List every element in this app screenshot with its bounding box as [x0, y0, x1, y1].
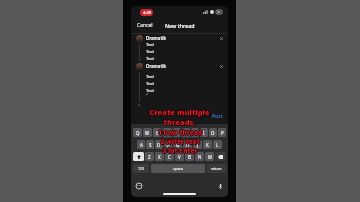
button[interactable]: Emoji [136, 183, 142, 189]
staticText: W [145, 130, 150, 136]
button[interactable]: Y [182, 128, 190, 137]
button[interactable]: Dictate [217, 183, 223, 189]
staticText: threads. [163, 118, 196, 128]
staticText: 3 hit enter [162, 146, 198, 155]
staticText: P [221, 130, 224, 136]
staticText: 3 hit enter [162, 147, 198, 156]
staticText: K [206, 142, 209, 148]
button[interactable]: Remove thread [219, 36, 224, 41]
staticText: Dramatik [146, 35, 166, 41]
button[interactable]: D [155, 140, 163, 149]
staticText: E [156, 130, 159, 136]
button[interactable]: R [163, 128, 172, 137]
button[interactable]: S [146, 140, 154, 149]
staticText: N [198, 154, 202, 160]
staticText: return [211, 166, 222, 171]
button[interactable]: H [183, 140, 192, 149]
staticText: 3 hit enter [161, 146, 197, 155]
button[interactable]: Remove thread [219, 64, 224, 69]
staticText: Text [146, 74, 155, 80]
button[interactable]: I [200, 128, 208, 137]
button[interactable]: return [207, 164, 226, 173]
staticText: 3 hit enter [163, 146, 199, 155]
staticText: J [197, 142, 199, 148]
button[interactable]: Q [133, 128, 142, 137]
button[interactable]: Cancel [136, 21, 154, 30]
button[interactable]: Backspace [215, 152, 226, 161]
staticText: threads. [164, 117, 197, 127]
staticText: Text [146, 88, 155, 94]
staticText: Z [148, 154, 151, 160]
staticText: L [216, 142, 219, 148]
staticText: Create multiple [149, 106, 210, 116]
button[interactable]: Post [211, 112, 224, 121]
button[interactable]: K [203, 140, 212, 149]
staticText: F [167, 142, 170, 148]
staticText: Cancel [137, 22, 153, 29]
staticText: Create multiple [149, 107, 210, 117]
staticText: C [168, 154, 171, 160]
staticText: 2 write text [161, 137, 201, 146]
button[interactable]: O [209, 128, 217, 137]
button[interactable]: A [137, 140, 145, 149]
staticText: 3 hit enter [162, 145, 198, 154]
button[interactable]: T [173, 128, 181, 137]
staticText: H [186, 142, 190, 148]
button[interactable]: space [151, 164, 205, 173]
button[interactable]: X [155, 152, 164, 161]
staticText: T [176, 130, 179, 136]
staticText: space [173, 166, 184, 171]
button[interactable]: N [195, 152, 204, 161]
button[interactable]: Shift [133, 152, 144, 161]
button[interactable]: W [143, 128, 152, 137]
staticText: Post [212, 113, 223, 120]
staticText: 2 write text [159, 137, 199, 146]
staticText: Create multiple [149, 108, 210, 118]
button[interactable]: M [205, 152, 214, 161]
staticText: 1 new thread [158, 127, 202, 136]
button[interactable]: F [164, 140, 172, 149]
staticText: Q [136, 130, 140, 136]
staticText: threads. [162, 117, 195, 127]
staticText: B [188, 154, 191, 160]
staticText: Create multiple [148, 107, 209, 117]
staticText: 4:29 [143, 10, 151, 15]
button[interactable]: Z [145, 152, 154, 161]
staticText: O [211, 130, 215, 136]
button[interactable]: U [191, 128, 199, 137]
staticText: Dramatik [146, 63, 166, 69]
staticText: threads. [163, 116, 196, 126]
staticText: G [176, 142, 180, 148]
staticText: 1 new thread [157, 128, 201, 137]
staticText: New thread [165, 22, 195, 29]
staticText: 1 new thread [158, 129, 202, 138]
staticText: V [178, 154, 181, 160]
button[interactable]: L [213, 140, 222, 149]
staticText: D [157, 142, 161, 148]
staticText: 1 new thread [158, 128, 202, 137]
staticText: U [193, 130, 197, 136]
button[interactable]: J [193, 140, 202, 149]
staticText: M [208, 154, 212, 160]
button[interactable]: B [185, 152, 194, 161]
button[interactable]: 123 [133, 164, 149, 173]
staticText: 123 [138, 166, 145, 171]
button[interactable]: P [218, 128, 226, 137]
staticText: 1 new thread [159, 128, 203, 137]
staticText: 2 write text [160, 137, 200, 146]
button[interactable]: V [175, 152, 184, 161]
button[interactable]: Attach media [145, 92, 149, 96]
button[interactable]: C [165, 152, 174, 161]
staticText: Text [146, 81, 155, 87]
staticText: S [149, 142, 152, 148]
staticText: Text [146, 42, 155, 48]
staticText: 2 write text [160, 136, 200, 145]
staticText: I [203, 130, 205, 136]
staticText: threads. [163, 117, 196, 127]
button[interactable]: E [153, 128, 162, 137]
staticText: Text [146, 56, 155, 62]
staticText: Y [185, 130, 188, 136]
staticText: A [140, 142, 143, 148]
staticText: Text [146, 49, 155, 55]
button[interactable]: G [173, 140, 182, 149]
